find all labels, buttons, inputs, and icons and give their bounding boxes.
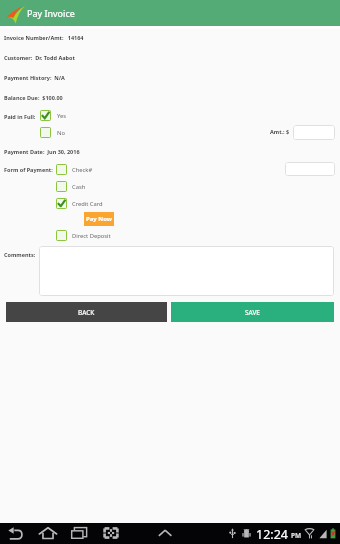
staticText: Invoice Number/Amt: 14164 [4,34,84,41]
button[interactable]: Yes [40,110,67,121]
button[interactable]: Check# [56,164,93,175]
staticText: Form of Payment: [4,166,53,173]
staticText: BACK [78,308,95,317]
button[interactable]: SAVE [171,302,334,322]
staticText: 12:24 [256,526,288,543]
staticText: Comments: [4,251,36,258]
button[interactable]: Pay Invoice [0,0,340,26]
staticText: No [57,129,65,137]
button[interactable]: Recent apps [71,527,88,539]
staticText: Amt.: $ [270,128,290,135]
staticText: Cash [72,183,86,191]
button[interactable]: Home [39,527,57,539]
staticText: Pay Now [86,215,112,223]
button[interactable]: BACK [6,302,167,322]
button[interactable]: Text field [293,125,335,140]
button[interactable]: No [40,127,65,138]
button[interactable]: Credit Card [56,198,103,209]
staticText: Customer: Dr. Todd Aabot [4,54,75,61]
staticText: Payment Date: Jun 30, 2016 [4,148,80,155]
staticText: Credit Card [72,200,103,208]
button[interactable]: Expand [158,527,172,539]
staticText: Payment History: N/A [4,74,65,81]
button[interactable]: Text field [285,162,335,176]
staticText: Pay Invoice [27,7,75,19]
button[interactable]: Cash [56,181,86,192]
staticText: Balance Due: $100.00 [4,94,63,101]
button[interactable]: Direct Deposit [56,230,111,241]
staticText: Direct Deposit [72,232,111,240]
staticText: Yes [57,112,67,120]
staticText: SAVE [245,308,260,317]
button[interactable]: Text field [39,246,334,296]
staticText: Paid in Full: [4,113,36,120]
button[interactable]: Pay Now [84,212,114,226]
button[interactable]: Screenshot [103,527,119,539]
staticText: PM [291,531,302,540]
staticText: Check# [72,166,93,174]
button[interactable]: Back [8,527,23,540]
